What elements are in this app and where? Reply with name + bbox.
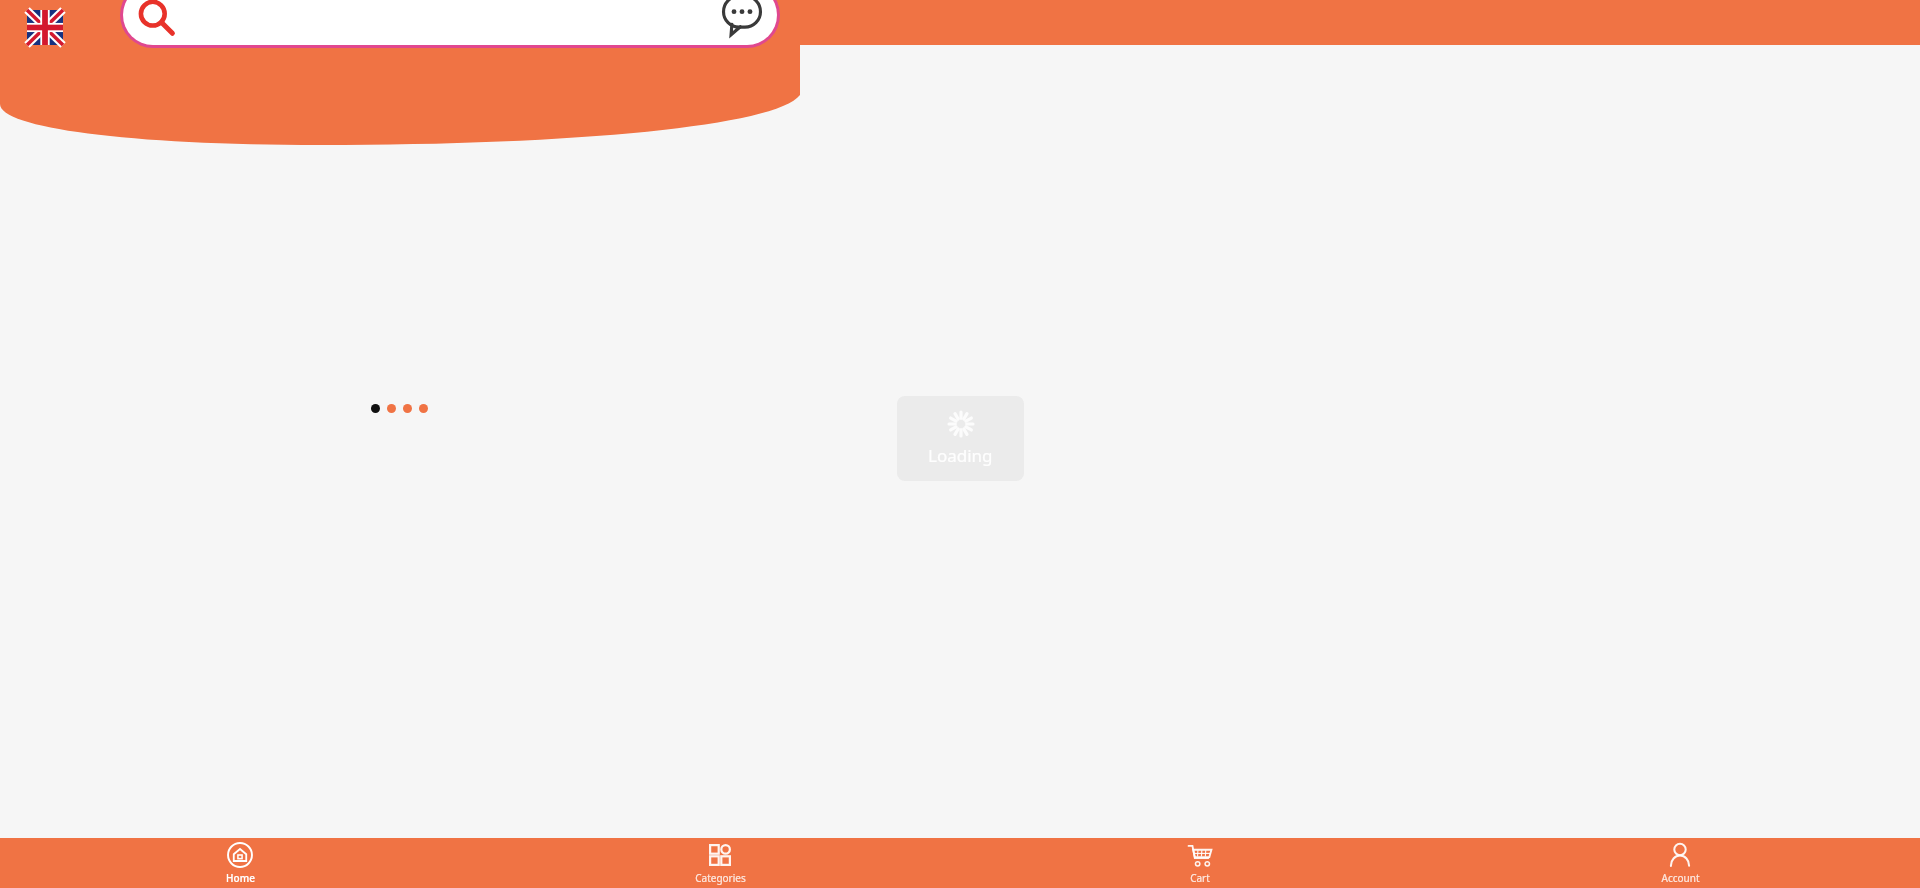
staticText: Loading — [928, 444, 993, 467]
button[interactable]: Messages — [721, 0, 763, 36]
staticText: Account — [1661, 871, 1700, 885]
button[interactable]: Cart — [960, 838, 1440, 888]
staticText: Home — [226, 871, 255, 885]
button[interactable]: Language — [27, 10, 63, 45]
button[interactable] — [387, 404, 396, 413]
staticText: Cart — [1190, 871, 1210, 885]
button[interactable] — [403, 404, 412, 413]
button[interactable]: Messages — [123, 0, 777, 45]
button[interactable]: Home — [0, 838, 480, 888]
button[interactable]: Categories — [480, 838, 960, 888]
button[interactable] — [371, 404, 380, 413]
button[interactable]: Account — [1440, 838, 1920, 888]
button[interactable] — [419, 404, 428, 413]
staticText: Categories — [695, 871, 746, 885]
